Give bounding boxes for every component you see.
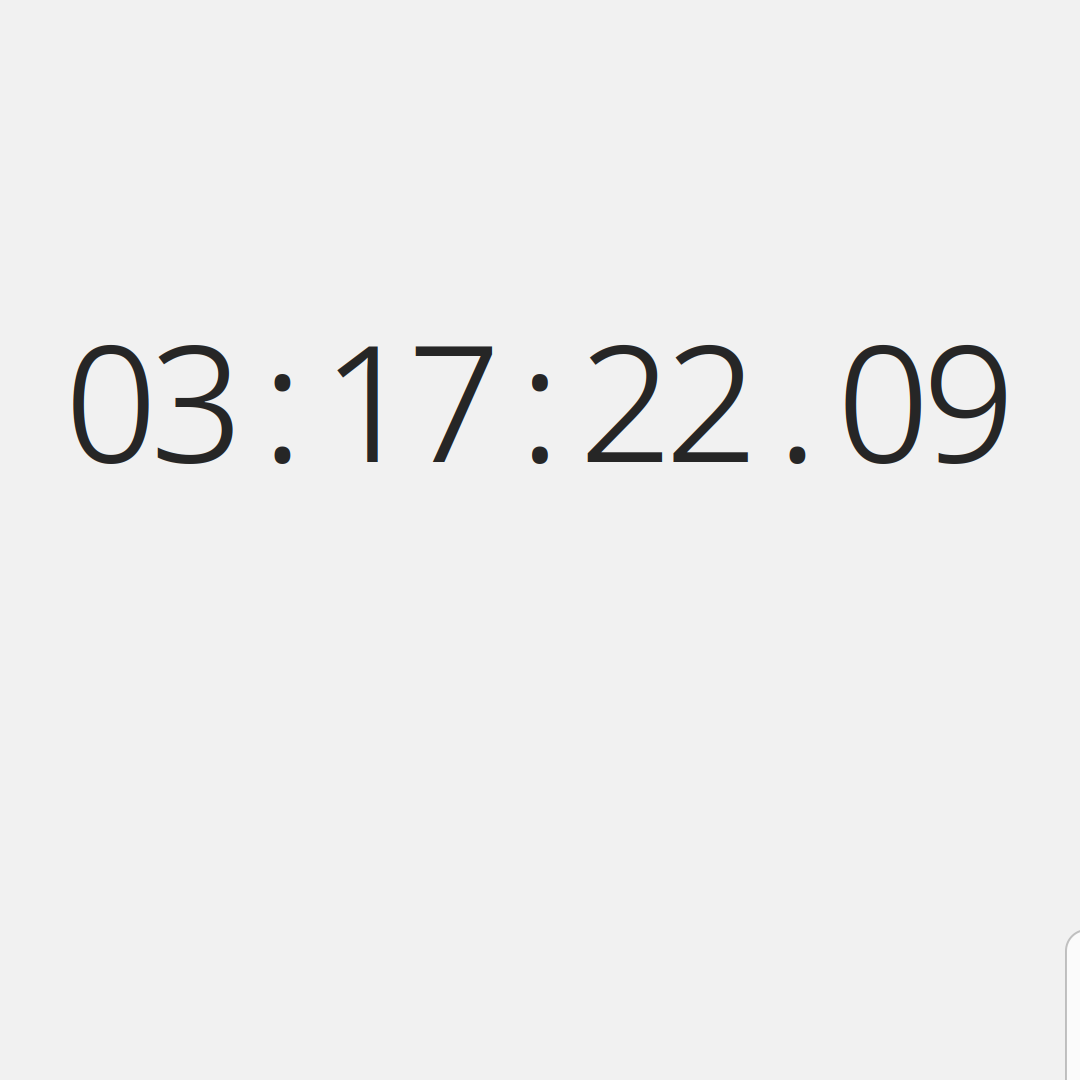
staticText: . (777, 288, 818, 510)
staticText: 0 (837, 288, 930, 510)
staticText: : (262, 288, 303, 510)
staticText: 7 (408, 288, 501, 510)
staticText: 0 (64, 288, 157, 510)
staticText: : (519, 288, 560, 510)
staticText: 1 (322, 288, 415, 510)
staticText: 9 (922, 288, 1015, 510)
staticText: 2 (665, 288, 758, 510)
staticText: 3 (150, 288, 243, 510)
staticText: 2 (579, 288, 672, 510)
